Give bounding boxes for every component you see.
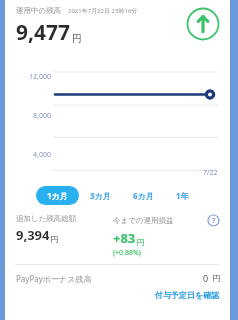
staticText: PayPayボーナス残高	[16, 273, 92, 284]
button[interactable]: 1カ月	[36, 186, 79, 205]
button[interactable]: 6カ月	[122, 186, 165, 205]
button[interactable]: 付与予定日を確認	[155, 290, 220, 300]
button[interactable]: 1年	[165, 186, 200, 205]
staticText: 0	[203, 272, 209, 284]
staticText: 3カ月	[90, 190, 111, 201]
staticText: 運用中の残高	[16, 6, 62, 15]
button[interactable]: 3カ月	[79, 186, 122, 205]
staticText: 9,394	[16, 226, 50, 244]
staticText: 9,477	[16, 18, 71, 47]
staticText: 今までの運用損益	[113, 216, 174, 225]
staticText: 1カ月	[47, 190, 68, 201]
staticText: 追加した残高総額	[16, 214, 77, 223]
staticText: 1年	[176, 190, 189, 201]
button[interactable]: 運用損益について	[207, 214, 220, 227]
staticText: 2021年7月22日 23時16分	[68, 7, 138, 15]
staticText: (+0.88%)	[113, 248, 141, 258]
button[interactable]: 残高を追加する	[186, 7, 220, 41]
staticText: +83	[113, 229, 136, 247]
staticText: 7/22	[203, 168, 218, 178]
staticText: 4,000	[33, 150, 51, 160]
staticText: 付与予定日を確認	[155, 290, 220, 300]
staticText: 円	[72, 32, 82, 45]
staticText: 円	[50, 234, 58, 244]
staticText: ?	[212, 216, 216, 226]
staticText: 円	[212, 273, 220, 283]
staticText: 円	[136, 237, 144, 247]
staticText: 12,000	[29, 72, 51, 82]
staticText: 8,000	[33, 111, 51, 121]
staticText: 6カ月	[133, 190, 154, 201]
